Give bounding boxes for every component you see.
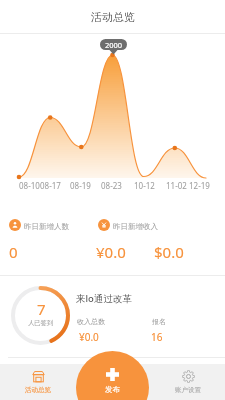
staticText: 7 [37,299,46,319]
staticText: 昨日新增人数 [24,222,69,231]
button[interactable]: 发布 [76,351,149,400]
staticText: 12-19 [189,180,210,191]
staticText: 08-23 [101,180,122,191]
staticText: 发布 [105,385,120,394]
button[interactable]: 7 [0,276,225,357]
staticText: ¥0.0 [96,242,126,262]
staticText: 08-10 [19,180,40,191]
staticText: 来lo通过改革 [76,292,132,305]
staticText: 人已签到 [28,319,54,327]
staticText: 08-17 [40,180,61,191]
button[interactable]: 账户设置 [150,364,225,400]
staticText: 10-12 [134,180,155,191]
staticText: 收入总数 [77,317,105,326]
staticText: 2000 [105,40,123,50]
staticText: 昨日新增收入 [113,222,158,231]
button[interactable]: 活动总览 [0,364,75,400]
staticText: 08-19 [70,180,91,191]
staticText: 16 [151,330,163,344]
staticText: 报名 [152,317,166,326]
staticText: 11-02 [166,180,187,191]
staticText: 活动总览 [91,10,135,24]
staticText: 账户设置 [175,386,201,394]
staticText: $0.0 [154,242,184,262]
staticText: 活动总览 [25,386,51,394]
staticText: 0 [9,242,18,262]
staticText: ¥0.0 [79,330,99,344]
